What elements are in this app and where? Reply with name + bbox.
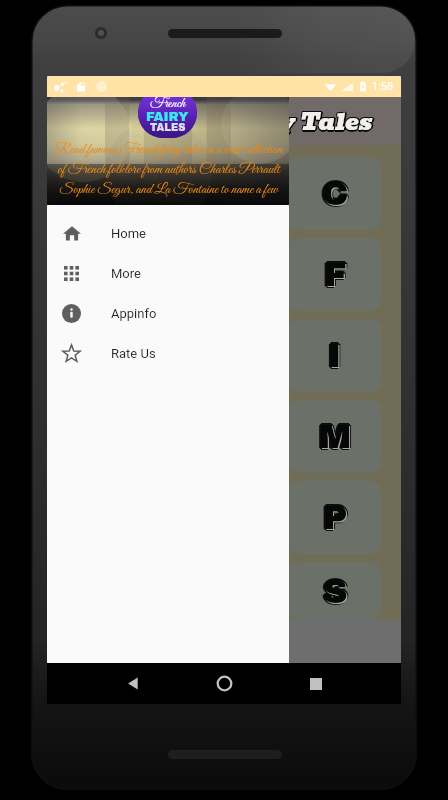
button[interactable]: Appinfo: [47, 293, 289, 333]
staticText: Appinfo: [111, 306, 157, 321]
button[interactable]: C: [289, 157, 381, 230]
staticText: More: [111, 266, 141, 281]
staticText: I: [326, 337, 340, 374]
staticText: D: [102, 256, 129, 293]
staticText: P: [323, 499, 348, 536]
staticText: D: [100, 256, 127, 293]
button[interactable]: G: [67, 319, 159, 392]
staticText: M: [320, 417, 353, 454]
button[interactable]: Home: [47, 213, 289, 253]
staticText: French Fairy Tales: [128, 102, 372, 139]
staticText: M: [319, 420, 352, 457]
button[interactable]: D: [67, 238, 159, 311]
staticText: A: [101, 176, 128, 213]
staticText: I: [328, 339, 342, 376]
staticText: B: [211, 177, 238, 214]
staticText: P: [323, 501, 348, 538]
staticText: G: [100, 336, 129, 373]
staticText: C: [322, 173, 349, 210]
button[interactable]: P: [289, 481, 381, 554]
button[interactable]: Home: [179, 663, 270, 704]
staticText: S: [325, 573, 350, 610]
staticText: P: [325, 499, 350, 536]
staticText: G: [100, 338, 129, 375]
staticText: C: [322, 177, 349, 214]
button[interactable]: Recent apps: [270, 663, 361, 704]
staticText: A: [100, 175, 127, 212]
button[interactable]: A: [67, 157, 159, 230]
staticText: I: [329, 338, 343, 375]
staticText: D: [100, 254, 127, 291]
staticText: F: [324, 256, 347, 293]
staticText: I: [327, 338, 341, 375]
staticText: S: [323, 571, 348, 608]
staticText: I: [327, 336, 341, 373]
staticText: S: [323, 575, 348, 612]
staticText: D: [99, 255, 126, 292]
staticText: S: [321, 573, 346, 610]
staticText: Read famous French fairy tales in a vast…: [54, 140, 283, 199]
button[interactable]: Open navigation drawer: [57, 97, 85, 145]
staticText: F: [325, 255, 348, 292]
staticText: B: [212, 174, 239, 211]
staticText: A: [101, 176, 128, 213]
staticText: French Fairy Tales: [128, 104, 372, 141]
staticText: S: [322, 572, 347, 609]
staticText: S: [323, 573, 348, 610]
button[interactable]: M: [289, 400, 381, 473]
staticText: C: [323, 174, 350, 211]
button[interactable]: Back: [87, 663, 179, 704]
staticText: C: [322, 175, 349, 212]
button[interactable]: B: [178, 157, 270, 230]
staticText: D: [98, 256, 125, 293]
button[interactable]: I: [289, 319, 381, 392]
staticText: French Fairy Tales: [129, 105, 373, 142]
staticText: S: [324, 572, 349, 609]
button[interactable]: Rate Us: [47, 333, 289, 373]
staticText: 1:58: [372, 80, 394, 93]
button[interactable]: More: [47, 253, 289, 293]
staticText: A: [100, 177, 127, 214]
button[interactable]: S: [289, 562, 381, 620]
staticText: G: [100, 338, 129, 375]
button[interactable]: F: [289, 238, 381, 311]
staticText: A: [101, 174, 128, 211]
staticText: French Fairy Tales: [129, 102, 373, 139]
staticText: D: [101, 257, 128, 294]
